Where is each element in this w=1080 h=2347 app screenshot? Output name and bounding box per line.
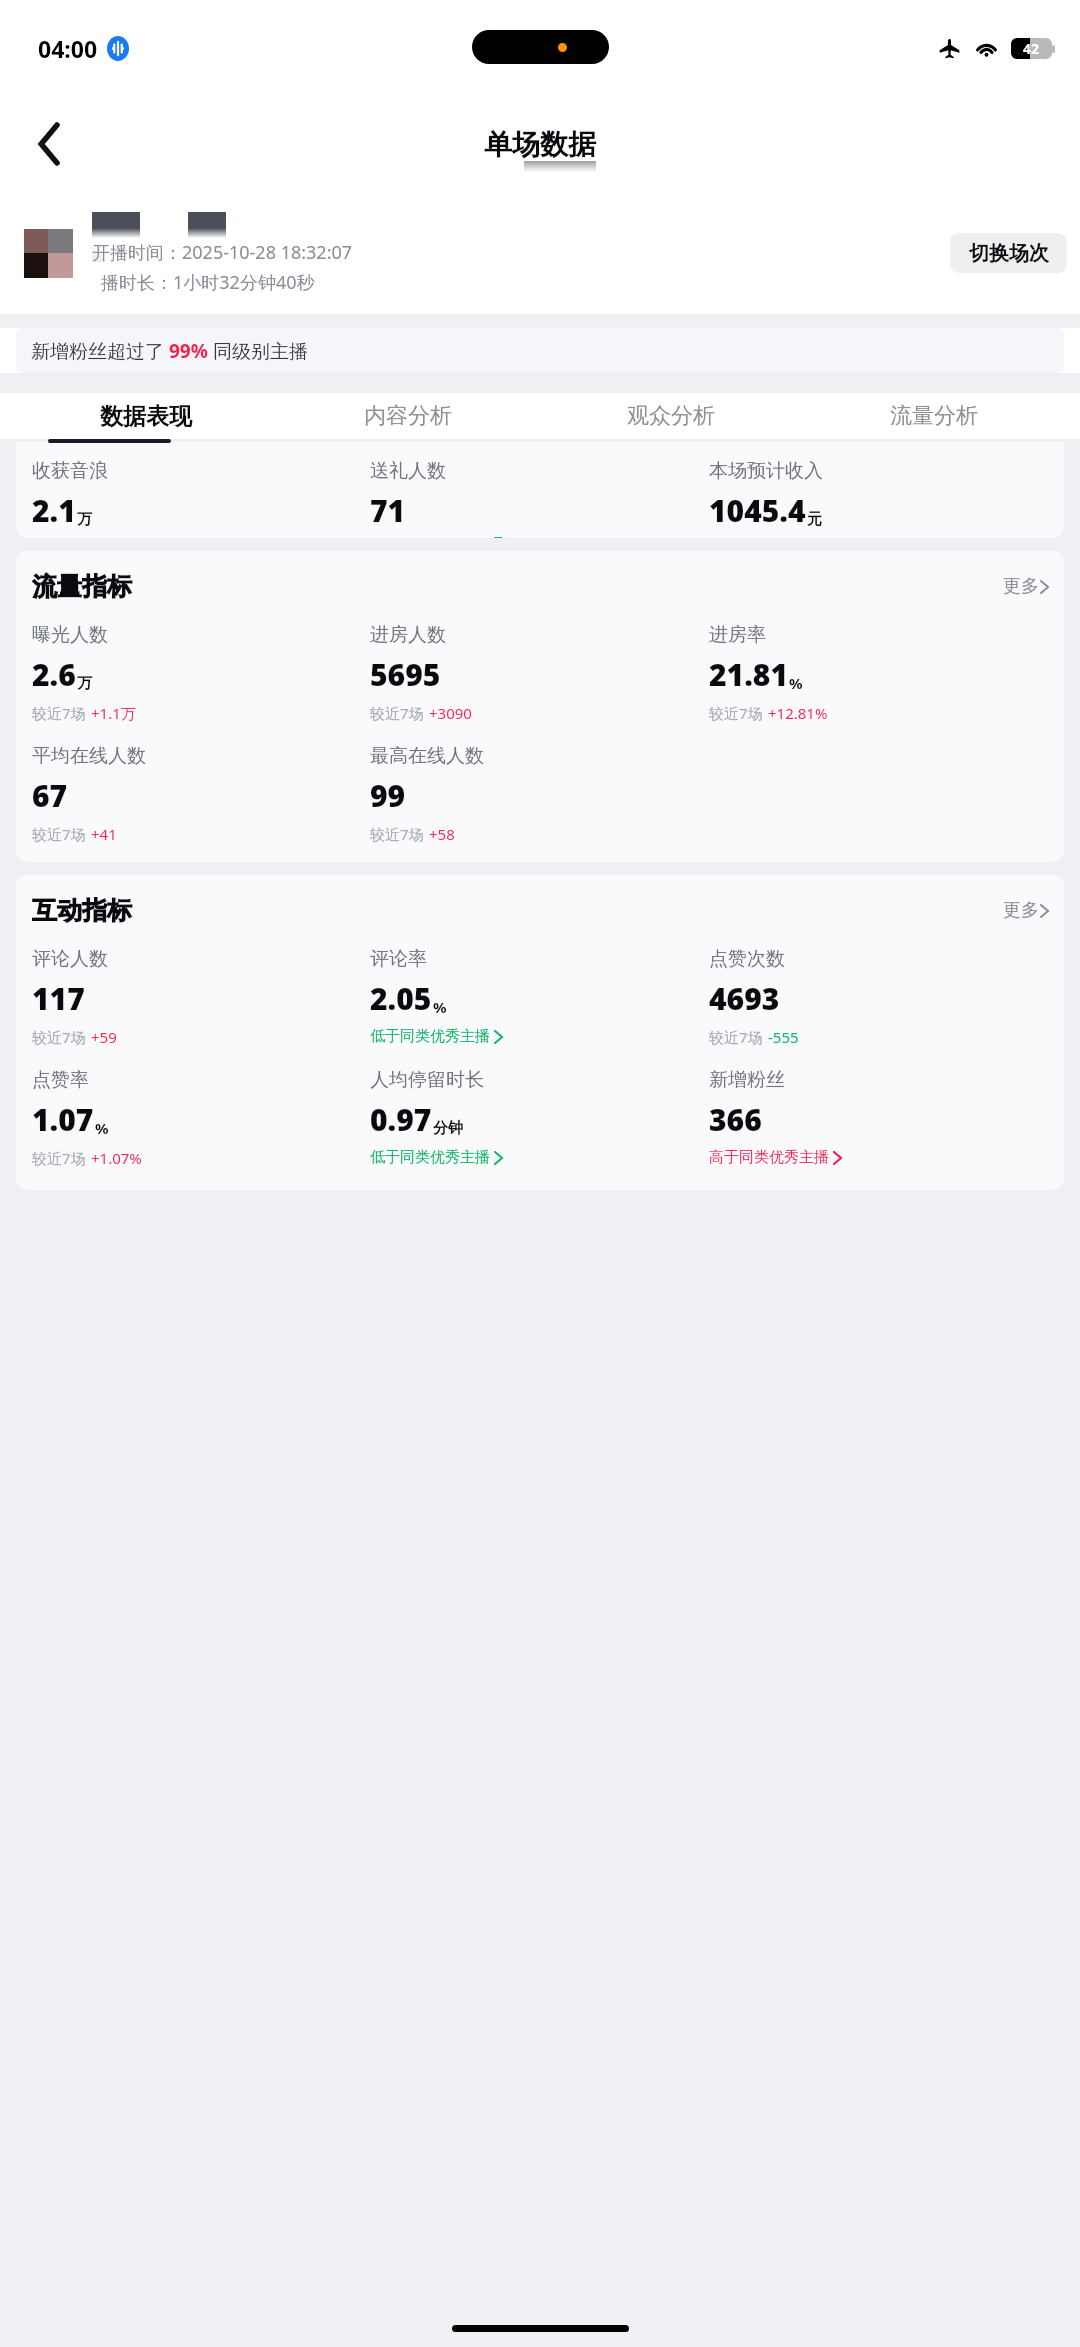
staticText: 元 bbox=[807, 510, 822, 529]
staticText: +58 bbox=[429, 824, 455, 844]
staticText: +59 bbox=[91, 1027, 117, 1047]
staticText: +1.1万 bbox=[91, 703, 136, 723]
staticText: 67 bbox=[32, 775, 68, 816]
staticText: 低于同类优秀主播 bbox=[370, 1148, 490, 1167]
button[interactable]: Back bbox=[20, 114, 80, 174]
staticText: 分钟 bbox=[433, 1119, 463, 1138]
button[interactable]: 数据表现 bbox=[15, 393, 277, 439]
staticText: 平均在线人数 bbox=[32, 744, 146, 768]
button[interactable]: 新增粉丝超过了 bbox=[16, 328, 1064, 373]
staticText: 人均停留时长 bbox=[370, 1068, 484, 1092]
staticText: 切换场次 bbox=[969, 241, 1049, 266]
staticText: 99% bbox=[169, 338, 208, 364]
staticText: 99 bbox=[370, 775, 406, 816]
staticText: 互动指标 bbox=[32, 895, 132, 926]
staticText: 21.81 bbox=[709, 654, 788, 695]
staticText: 较近7场 bbox=[370, 703, 424, 723]
staticText: 评论率 bbox=[370, 947, 427, 971]
staticText: 较近7场 bbox=[32, 703, 86, 723]
staticText: 5695 bbox=[370, 654, 441, 695]
staticText: 较近7场 bbox=[709, 703, 763, 723]
staticText: 更多 bbox=[1003, 899, 1039, 922]
staticText: 数据表现 bbox=[100, 402, 192, 431]
staticText: 播时长：1小时32分钟40秒 bbox=[101, 270, 315, 295]
staticText: % bbox=[789, 673, 803, 693]
staticText: 新增粉丝超过了 bbox=[31, 338, 169, 364]
staticText: 点赞率 bbox=[32, 1068, 89, 1092]
button[interactable]: 更多 bbox=[1003, 899, 1048, 922]
staticText: 较近7场 bbox=[32, 824, 86, 844]
staticText: 本场预计收入 bbox=[709, 459, 823, 483]
staticText: +12.81% bbox=[768, 703, 828, 723]
staticText: 2.6 bbox=[32, 654, 76, 695]
staticText: 04:00 bbox=[38, 33, 98, 64]
staticText: +3090 bbox=[429, 703, 472, 723]
staticText: 71 bbox=[370, 490, 406, 531]
staticText: 高于同类优秀主播 bbox=[709, 1148, 829, 1167]
staticText: 较近7场 bbox=[32, 1027, 86, 1047]
staticText: 117 bbox=[32, 978, 85, 1019]
staticText: 新增粉丝 bbox=[709, 1068, 785, 1092]
staticText: 2.05 bbox=[370, 978, 432, 1019]
staticText: 送礼人数 bbox=[370, 459, 446, 483]
button[interactable]: 切换场次 bbox=[950, 233, 1067, 273]
staticText: +1.07% bbox=[91, 1148, 142, 1168]
staticText: 4693 bbox=[709, 978, 780, 1019]
staticText: 开播时间：2025-10-28 18:32:07 bbox=[92, 240, 353, 265]
button[interactable]: 流量指标 bbox=[16, 551, 1064, 862]
staticText: 流量指标 bbox=[32, 571, 132, 602]
button[interactable]: 收获音浪 bbox=[16, 442, 1064, 538]
staticText: % bbox=[433, 997, 447, 1017]
staticText: 1045.4 bbox=[709, 490, 806, 531]
staticText: % bbox=[95, 1118, 109, 1138]
staticText: 观众分析 bbox=[627, 402, 715, 430]
staticText: 万 bbox=[77, 674, 92, 693]
staticText: 1.07 bbox=[32, 1099, 94, 1140]
staticText: 曝光人数 bbox=[32, 623, 108, 647]
staticText: 评论人数 bbox=[32, 947, 108, 971]
staticText: +41 bbox=[91, 824, 117, 844]
staticText: 进房人数 bbox=[370, 623, 446, 647]
staticText: -555 bbox=[768, 1027, 799, 1047]
staticText: 0.97 bbox=[370, 1099, 432, 1140]
button[interactable]: 流量分析 bbox=[802, 393, 1065, 439]
staticText: 更多 bbox=[1003, 575, 1039, 598]
button[interactable]: 内容分析 bbox=[277, 393, 539, 439]
staticText: 同级别主播 bbox=[208, 338, 308, 364]
button[interactable]: 更多 bbox=[1003, 575, 1048, 598]
staticText: 进房率 bbox=[709, 623, 766, 647]
staticText: 流量分析 bbox=[890, 402, 978, 430]
staticText: 内容分析 bbox=[364, 402, 452, 430]
staticText: 最高在线人数 bbox=[370, 744, 484, 768]
button[interactable]: 观众分析 bbox=[539, 393, 802, 439]
button[interactable]: 互动指标 bbox=[16, 875, 1064, 1190]
staticText: 2.1 bbox=[32, 490, 76, 531]
staticText: 较近7场 bbox=[32, 1148, 86, 1168]
staticText: 收获音浪 bbox=[32, 459, 108, 483]
staticText: 366 bbox=[709, 1099, 762, 1140]
staticText: 万 bbox=[77, 510, 92, 529]
staticText: 较近7场 bbox=[370, 824, 424, 844]
staticText: 较近7场 bbox=[709, 1027, 763, 1047]
staticText: 单场数据 bbox=[484, 127, 596, 162]
staticText: 点赞次数 bbox=[709, 947, 785, 971]
staticText: 低于同类优秀主播 bbox=[370, 1027, 490, 1046]
staticText: 42 bbox=[1023, 39, 1040, 58]
